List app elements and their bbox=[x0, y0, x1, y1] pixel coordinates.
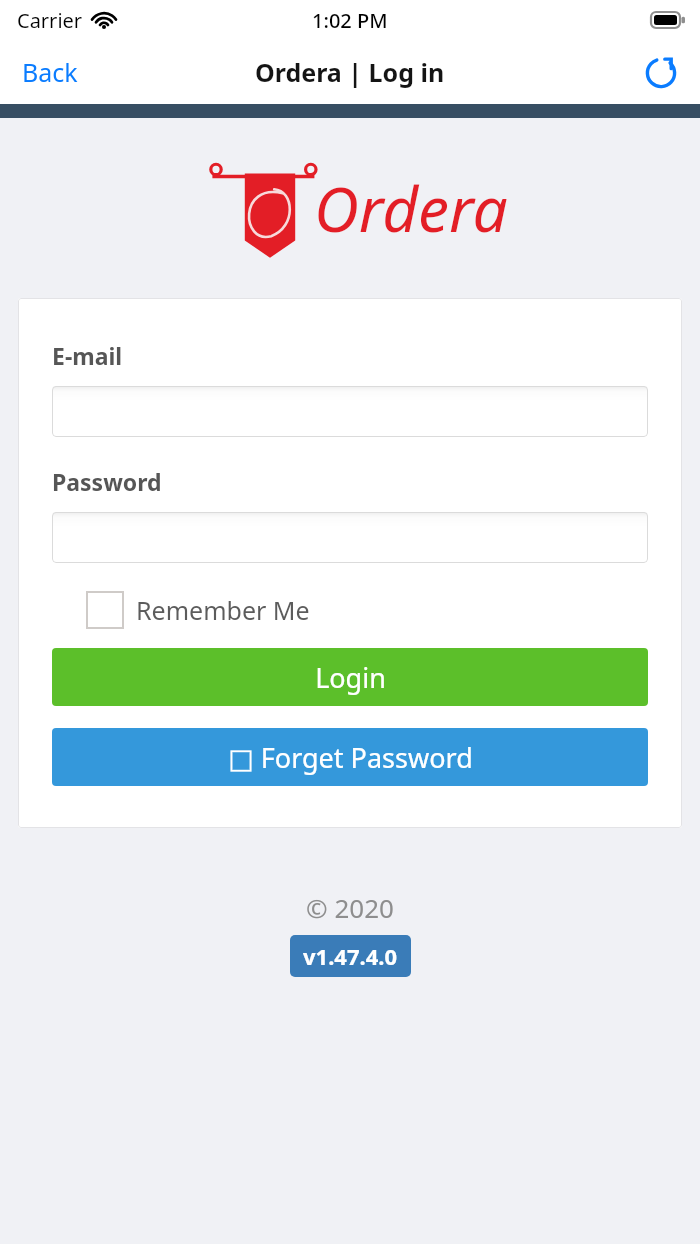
staticText: © 2020 bbox=[306, 890, 394, 925]
staticText: □ Forget Password bbox=[228, 739, 473, 776]
staticText: Ordera bbox=[314, 166, 508, 250]
button[interactable]: Login bbox=[52, 648, 648, 706]
staticText: 1:02 PM bbox=[312, 7, 388, 34]
staticText: Remember Me bbox=[136, 593, 310, 627]
staticText: Ordera | Log in bbox=[255, 55, 445, 89]
button[interactable]: v1.47.4.0 bbox=[290, 935, 411, 977]
button[interactable]: Remember Me bbox=[86, 591, 310, 629]
button[interactable]: □ Forget Password bbox=[52, 728, 648, 786]
button[interactable] bbox=[52, 512, 648, 563]
button[interactable]: Back bbox=[0, 45, 100, 99]
staticText: E-mail bbox=[52, 340, 123, 371]
staticText: v1.47.4.0 bbox=[303, 941, 398, 971]
staticText: Password bbox=[52, 466, 162, 497]
button[interactable]: Refresh bbox=[636, 47, 686, 97]
staticText: Login bbox=[315, 659, 386, 696]
staticText: Back bbox=[22, 55, 78, 89]
staticText: Carrier bbox=[17, 7, 83, 34]
button[interactable] bbox=[52, 386, 648, 437]
